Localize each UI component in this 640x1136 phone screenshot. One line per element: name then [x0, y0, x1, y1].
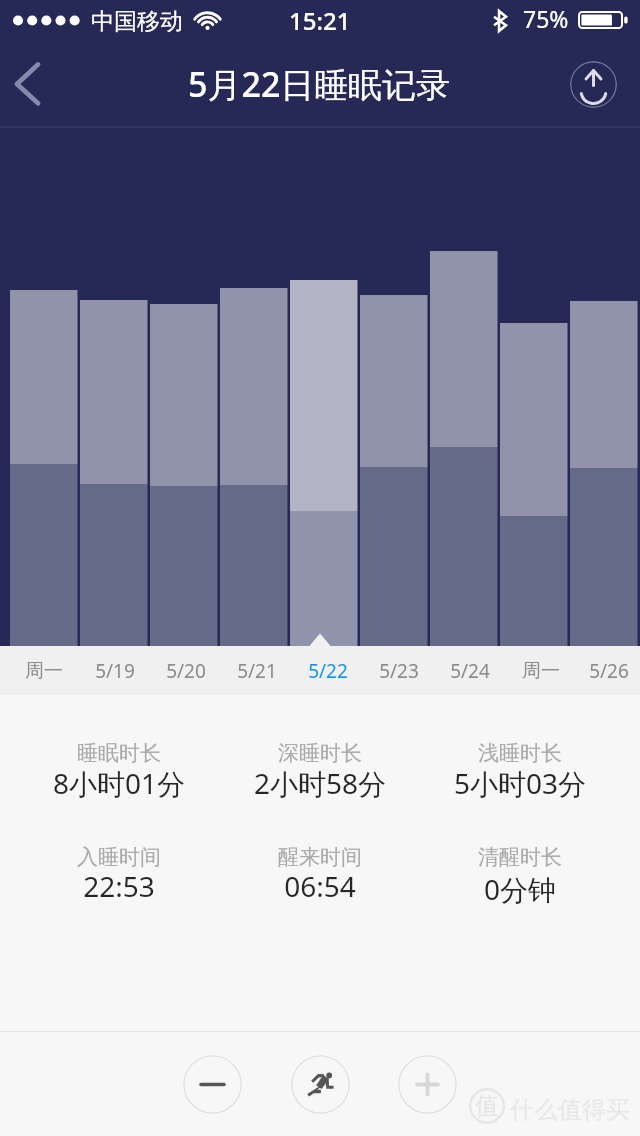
button[interactable]: Share: [570, 61, 617, 108]
staticText: 周一: [522, 659, 560, 683]
button[interactable]: Run: [291, 1055, 350, 1114]
staticText: 5/24: [450, 658, 490, 684]
button[interactable]: 醒来时间: [220, 844, 420, 870]
staticText: 醒来时间: [220, 844, 420, 870]
staticText: 8小时01分: [19, 764, 219, 802]
staticText: 中国移动: [91, 7, 183, 36]
staticText: 0分钟: [420, 870, 620, 908]
button[interactable]: 5/22: [294, 646, 362, 695]
button[interactable]: Back: [0, 40, 80, 128]
staticText: 5/22: [308, 658, 348, 684]
button[interactable]: 5/21: [223, 646, 291, 695]
button[interactable]: 5/19: [81, 646, 149, 695]
staticText: 清醒时长: [420, 844, 620, 870]
staticText: 什么值得买: [510, 1095, 630, 1125]
button[interactable]: 周一: [10, 646, 78, 695]
button[interactable]: 5/20: [152, 646, 220, 695]
button[interactable]: 5/24: [436, 646, 504, 695]
staticText: 5小时03分: [420, 764, 620, 802]
button[interactable]: 5/26: [578, 646, 640, 695]
button[interactable]: 5/23: [365, 646, 433, 695]
staticText: 5/19: [95, 658, 135, 684]
staticText: 值: [475, 1091, 499, 1121]
staticText: 深睡时长: [220, 740, 420, 766]
button[interactable]: 清醒时长: [420, 844, 620, 870]
button[interactable]: Decrease: [183, 1055, 242, 1114]
button[interactable]: 深睡时长: [220, 740, 420, 766]
staticText: 5/26: [589, 658, 629, 684]
staticText: 22:53: [19, 867, 219, 905]
staticText: 75%: [523, 3, 569, 34]
staticText: 周一: [25, 659, 63, 683]
staticText: 5月22日睡眠记录: [188, 61, 451, 107]
button[interactable]: Increase: [398, 1055, 457, 1114]
staticText: 15:21: [289, 4, 351, 37]
staticText: 5/21: [237, 658, 277, 684]
staticText: 06:54: [220, 867, 420, 905]
staticText: 5/23: [379, 658, 419, 684]
staticText: 2小时58分: [220, 764, 420, 802]
staticText: 浅睡时长: [420, 740, 620, 766]
staticText: 入睡时间: [19, 844, 219, 870]
button[interactable]: 入睡时间: [19, 844, 219, 870]
staticText: 5/20: [166, 658, 206, 684]
button[interactable]: 周一: [507, 646, 575, 695]
button[interactable]: 浅睡时长: [420, 740, 620, 766]
staticText: 睡眠时长: [19, 740, 219, 766]
button[interactable]: 睡眠时长: [19, 740, 219, 766]
